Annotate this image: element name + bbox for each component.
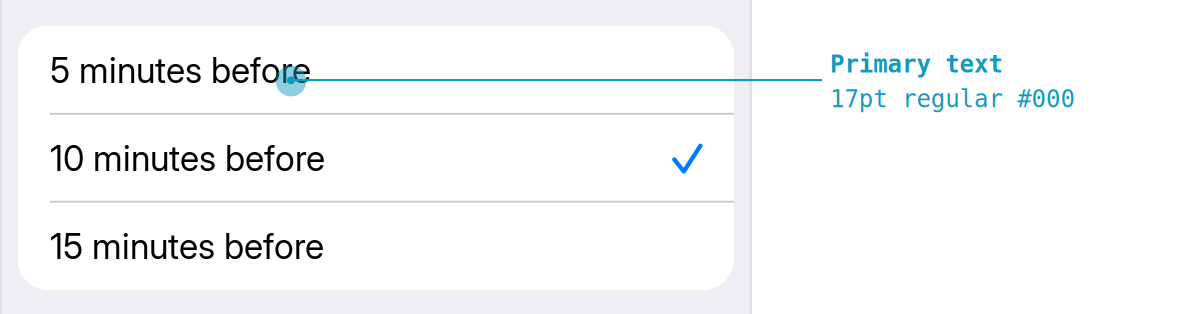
staticText: 15 minutes before bbox=[50, 225, 324, 267]
staticText: Primary text bbox=[830, 50, 1002, 78]
button[interactable]: 5 minutes before bbox=[18, 26, 734, 114]
staticText: 17pt regular #000 bbox=[830, 85, 1074, 113]
button[interactable]: 10 minutes before bbox=[18, 114, 734, 202]
button[interactable]: 15 minutes before bbox=[18, 202, 734, 290]
staticText: 10 minutes before bbox=[50, 137, 325, 179]
staticText: 5 minutes before bbox=[50, 49, 311, 91]
